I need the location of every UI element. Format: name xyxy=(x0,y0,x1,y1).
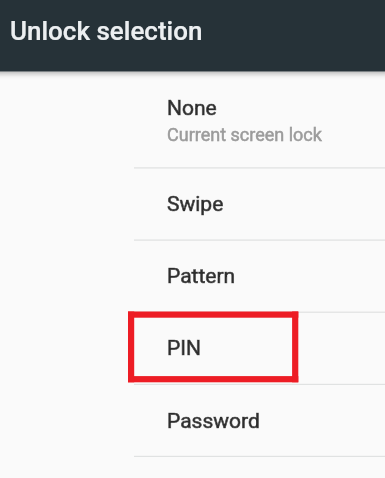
button[interactable] xyxy=(134,240,385,312)
button[interactable] xyxy=(134,312,385,385)
button[interactable] xyxy=(134,168,385,240)
staticText: None xyxy=(167,96,217,121)
staticText: Pattern xyxy=(167,264,236,289)
staticText: PIN xyxy=(167,336,201,361)
button[interactable]: Unlock selection xyxy=(0,0,385,71)
staticText: Pattern xyxy=(167,264,236,289)
staticText: Current screen lock xyxy=(167,124,322,145)
button[interactable] xyxy=(134,71,385,168)
staticText: None xyxy=(167,96,217,121)
button[interactable] xyxy=(134,384,385,456)
other: Highlighted PIN option xyxy=(0,0,385,478)
staticText: Password xyxy=(167,409,260,434)
staticText: Swipe xyxy=(167,192,224,217)
staticText: Swipe xyxy=(167,192,224,217)
staticText: Current screen lock xyxy=(167,124,322,145)
staticText: PIN xyxy=(167,336,201,361)
staticText: Password xyxy=(167,409,260,434)
staticText: Unlock selection xyxy=(10,16,203,46)
